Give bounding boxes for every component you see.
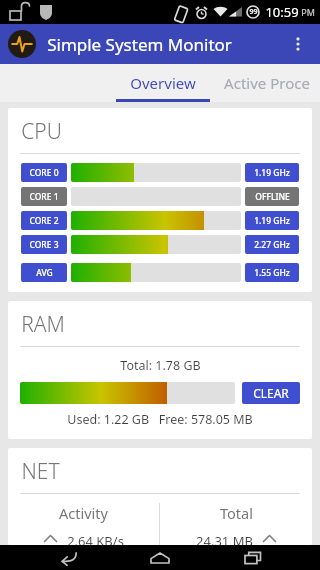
staticText: NET — [21, 457, 60, 486]
staticText: 99 — [249, 7, 258, 17]
staticText: CORE 3 — [29, 239, 59, 251]
staticText: CORE 2 — [29, 215, 59, 227]
staticText: CLEAR — [253, 385, 289, 401]
staticText: 10:59 — [265, 3, 299, 21]
staticText: Active Proce — [224, 73, 310, 93]
staticText: 2.64 KB/s — [67, 532, 124, 545]
staticText: 24.31 MB — [196, 532, 253, 545]
button[interactable]: CORE 1 — [21, 187, 299, 206]
staticText: Overview — [130, 73, 196, 93]
staticText: Used: 1.22 GB Free: 578.05 MB — [67, 411, 253, 428]
staticText: PM — [301, 6, 315, 18]
button[interactable]: Activity — [8, 503, 159, 545]
button[interactable]: Active Proce — [210, 64, 320, 102]
button[interactable]: Overview — [116, 64, 210, 102]
staticText: CORE 0 — [29, 167, 59, 179]
button[interactable]: CLEAR — [242, 382, 300, 404]
button[interactable]: More options — [280, 26, 316, 62]
button[interactable]: Recent apps — [228, 545, 276, 570]
staticText: RAM — [21, 310, 65, 339]
staticText: Activity — [59, 503, 108, 523]
button[interactable]: Total — [160, 503, 312, 545]
button[interactable]: AVG — [21, 263, 299, 282]
staticText: CPU — [21, 117, 62, 146]
button[interactable]: CORE 0 — [21, 163, 299, 182]
button[interactable]: Home — [136, 545, 184, 570]
button[interactable]: Back — [44, 545, 92, 570]
staticText: OFFLINE — [255, 191, 290, 203]
staticText: 1.55 GHz — [254, 267, 290, 279]
staticText: 1.19 GHz — [254, 167, 290, 179]
staticText: Total — [220, 503, 253, 523]
staticText: CORE 1 — [29, 191, 59, 203]
staticText: 1.19 GHz — [254, 215, 290, 227]
staticText: 2.27 GHz — [254, 239, 290, 251]
staticText: AVG — [36, 267, 53, 279]
staticText: Simple System Monitor — [47, 33, 232, 56]
button[interactable]: CORE 3 — [21, 235, 299, 254]
staticText: Total: 1.78 GB — [120, 357, 201, 374]
button[interactable]: CORE 2 — [21, 211, 299, 230]
